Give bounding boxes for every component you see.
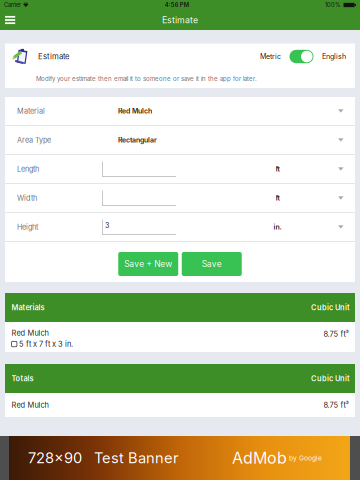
button[interactable]: Save xyxy=(182,252,242,276)
button[interactable]: Advertisement xyxy=(0,436,360,480)
button[interactable]: Units: Metric or English xyxy=(281,50,322,63)
staticText: Cubic Unit xyxy=(311,303,350,312)
staticText: Width xyxy=(17,194,37,202)
staticText: Red Mulch xyxy=(118,107,152,115)
staticText: 5 ft x 7 ft x 3 in. xyxy=(19,339,73,348)
staticText: 3 xyxy=(105,221,109,230)
staticText: Totals xyxy=(11,374,33,383)
staticText: Red Mulch xyxy=(11,328,48,337)
staticText: in. xyxy=(274,223,282,231)
staticText: Estimate xyxy=(162,15,198,25)
staticText: Metric xyxy=(260,52,281,61)
staticText: 100% xyxy=(325,1,341,8)
staticText: ft xyxy=(276,194,280,202)
staticText: 8.75 ft³ xyxy=(323,400,348,409)
staticText: Length xyxy=(17,165,39,173)
staticText: AdMob xyxy=(232,448,287,468)
button[interactable]: Height xyxy=(5,213,355,241)
staticText: Cubic Unit xyxy=(311,374,350,383)
staticText: by Google xyxy=(287,454,322,462)
button[interactable]: Length xyxy=(5,155,355,183)
staticText: Area Type xyxy=(17,136,51,144)
button[interactable]: Material xyxy=(5,97,355,125)
staticText: Height xyxy=(17,223,38,231)
staticText: ft xyxy=(276,165,280,173)
staticText: 4:56 PM xyxy=(165,1,189,8)
button[interactable]: Save + New xyxy=(118,252,178,276)
button[interactable]: Area Type xyxy=(5,126,355,154)
button[interactable]: Width xyxy=(5,184,355,212)
staticText: Materials xyxy=(11,303,44,312)
staticText: Save + New xyxy=(124,259,172,269)
staticText: Rectangular xyxy=(118,136,157,144)
staticText: 728×90 Test Banner xyxy=(28,449,179,467)
staticText: Carrier xyxy=(4,1,21,8)
staticText: English xyxy=(322,52,346,61)
button[interactable]: Menu xyxy=(0,10,29,30)
staticText: Material xyxy=(17,107,45,115)
staticText: Red Mulch xyxy=(11,400,48,409)
staticText: Modify your estimate then email it to so… xyxy=(36,75,257,82)
staticText: Save xyxy=(202,259,222,269)
staticText: Estimate xyxy=(38,52,70,61)
staticText: 8.75 ft³ xyxy=(323,329,348,338)
